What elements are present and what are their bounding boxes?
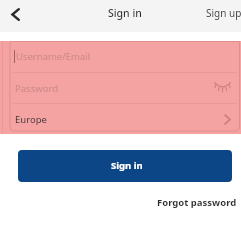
button[interactable]: Forgot password <box>152 192 241 213</box>
button[interactable]: Sign in <box>18 150 232 182</box>
staticText: Username/Email <box>16 50 91 63</box>
button[interactable]: Password <box>0 73 241 103</box>
staticText: Password <box>15 82 58 95</box>
staticText: Sign up <box>206 6 241 20</box>
staticText: Sign in <box>108 6 142 20</box>
staticText: Forgot password <box>157 196 237 209</box>
staticText: Sign in <box>111 159 143 172</box>
button[interactable]: Back <box>7 2 23 26</box>
button[interactable]: Europe <box>0 104 241 134</box>
button[interactable]: Username/Email <box>0 41 241 72</box>
button[interactable]: Sign up <box>201 1 241 25</box>
staticText: Europe <box>15 113 47 126</box>
